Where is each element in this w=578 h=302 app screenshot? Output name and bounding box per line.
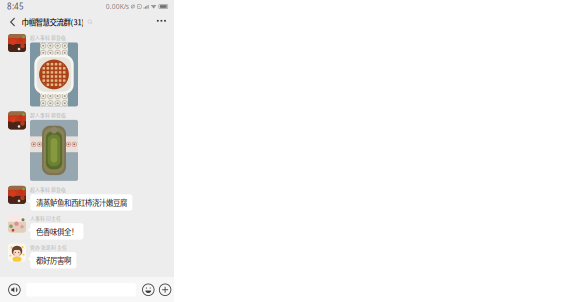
button[interactable]: 色香味俱全！ xyxy=(28,223,83,240)
button[interactable]: 清蒸鲈鱼和西红柿浇汁嫩豆腐 xyxy=(28,194,132,211)
staticText: 色香味俱全！ xyxy=(36,226,78,237)
staticText: 都好厉害啊 xyxy=(36,255,71,266)
button[interactable]: 都好厉害啊 xyxy=(28,252,76,268)
button[interactable]: Voice message xyxy=(6,278,23,302)
staticText: 清蒸鲈鱼和西红柿浇汁嫩豆腐 xyxy=(36,197,127,208)
staticText: 0.00K/s xyxy=(106,2,129,11)
staticText: 超人事科 郭登临 xyxy=(30,186,66,193)
staticText: 党办 张凯利 主任 xyxy=(30,244,67,251)
button[interactable]: More xyxy=(157,278,173,302)
staticText: 超人事科 郭登临 xyxy=(30,111,66,118)
button[interactable]: Back xyxy=(0,13,21,31)
staticText: 巾帼智慧交流群(31) xyxy=(21,17,84,27)
button[interactable]: More xyxy=(149,13,174,31)
button[interactable]: Emoji xyxy=(140,278,157,302)
staticText: 8:45 xyxy=(7,1,24,12)
staticText: 人事科 闫主任 xyxy=(30,215,61,222)
staticText: 超人事科 郭登临 xyxy=(30,34,66,41)
